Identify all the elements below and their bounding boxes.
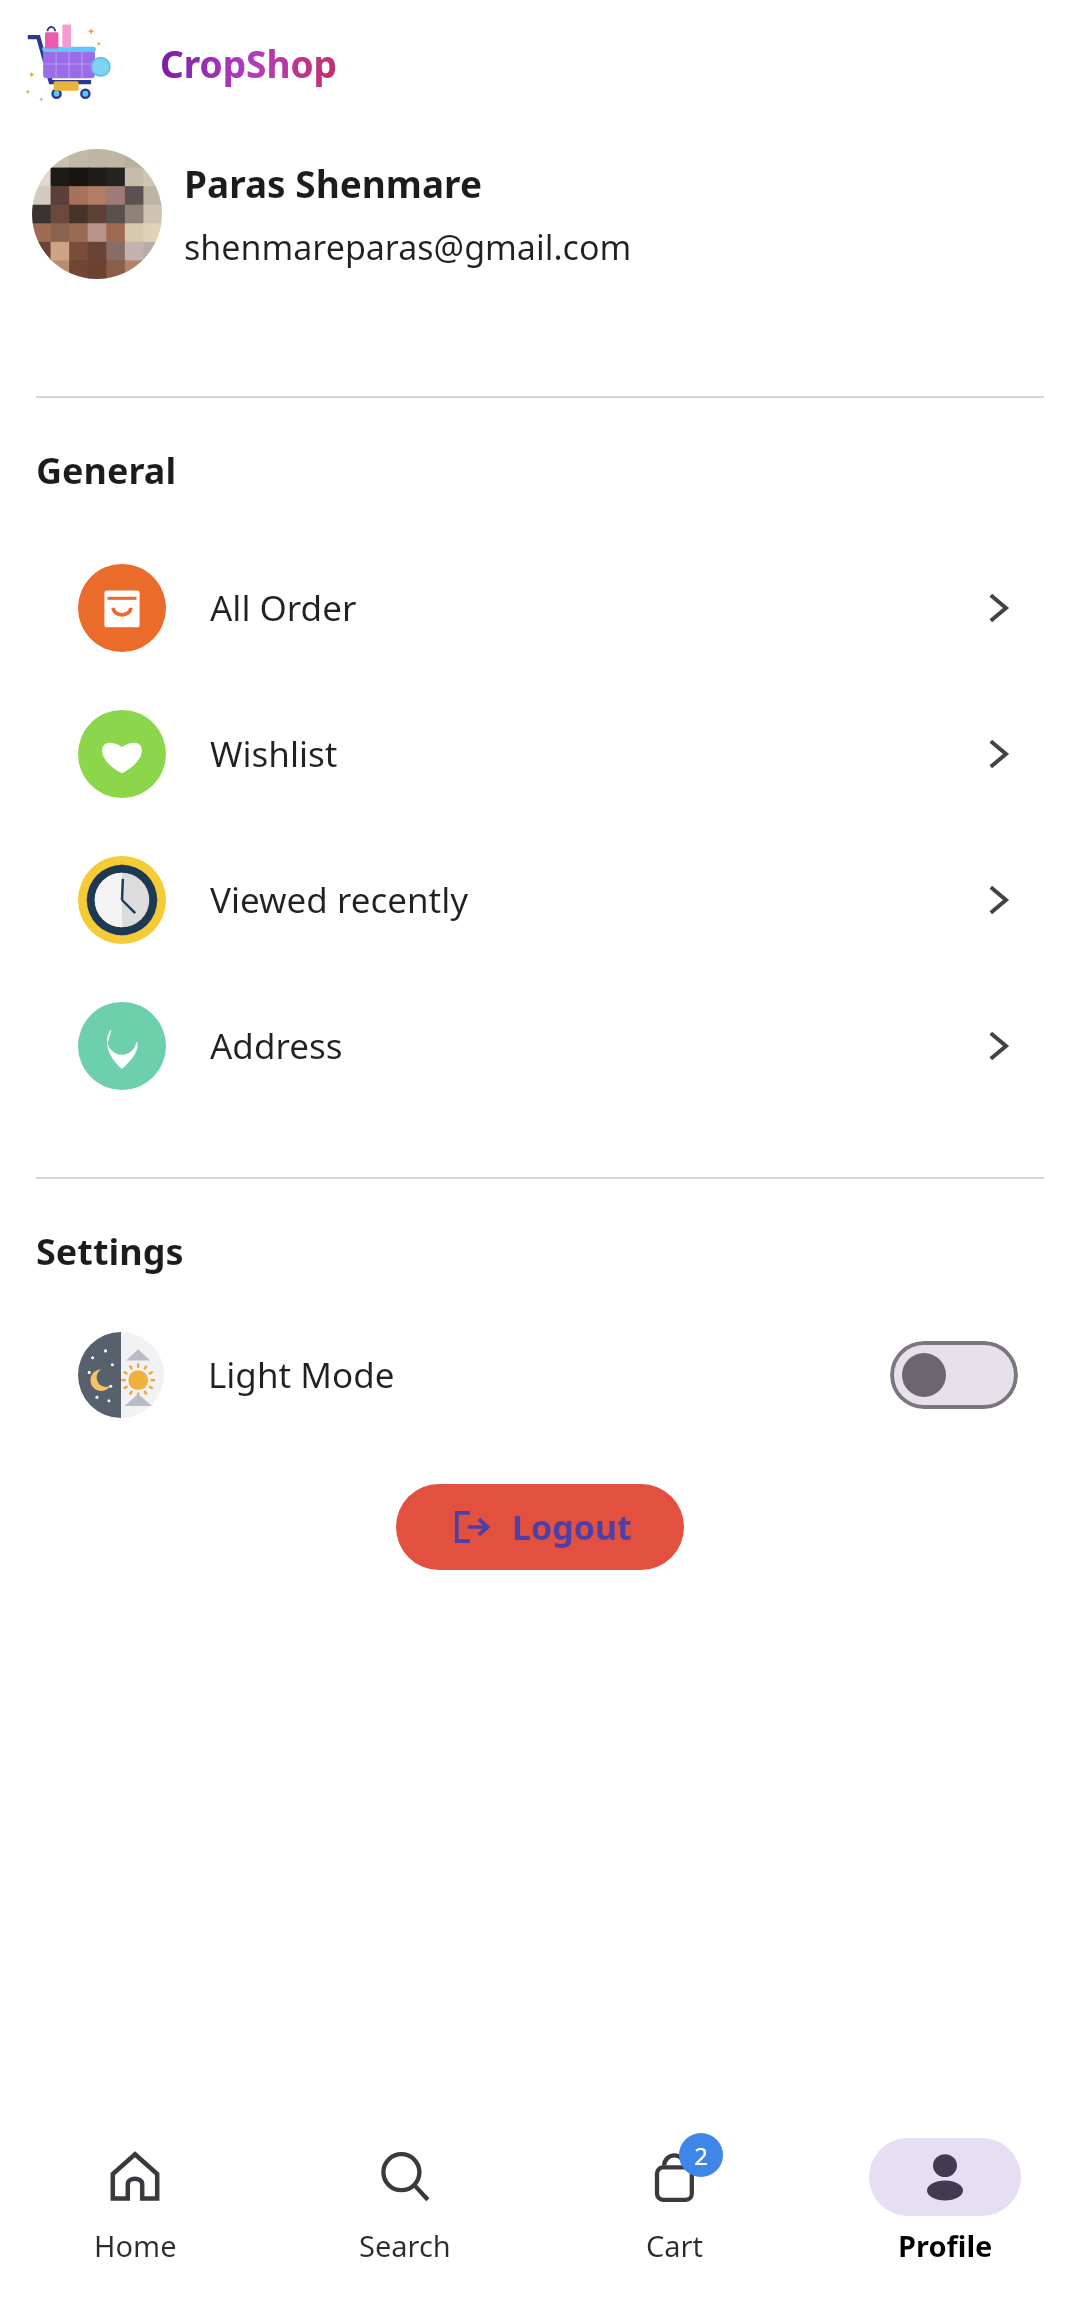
staticText: All Order xyxy=(210,584,357,632)
staticText: Paras Shenmare xyxy=(184,158,482,208)
button[interactable]: Light Mode xyxy=(0,1316,1080,1434)
button[interactable]: Light mode toggle xyxy=(890,1341,1018,1409)
staticText: Home xyxy=(94,2226,177,2265)
staticText: Address xyxy=(210,1022,343,1070)
staticText: Viewed recently xyxy=(210,876,469,924)
button[interactable]: Logout xyxy=(396,1484,684,1570)
staticText: Wishlist xyxy=(210,730,338,778)
button[interactable]: Viewed recently xyxy=(0,827,1080,973)
staticText: Cart xyxy=(646,2226,704,2265)
button[interactable]: Wishlist xyxy=(0,681,1080,827)
staticText: shenmareparas@gmail.com xyxy=(184,224,632,270)
button[interactable]: 2 xyxy=(540,2120,810,2314)
staticText: Settings xyxy=(36,1227,184,1276)
button[interactable]: Address xyxy=(0,973,1080,1119)
button[interactable]: All Order xyxy=(0,535,1080,681)
button[interactable]: Profile xyxy=(810,2120,1080,2314)
staticText: Light Mode xyxy=(208,1351,395,1399)
button[interactable]: Paras Shenmare xyxy=(0,126,1080,301)
button[interactable]: Home xyxy=(0,2120,270,2314)
staticText: General xyxy=(36,446,177,495)
staticText: Logout xyxy=(512,1504,632,1550)
staticText: CropShop xyxy=(160,38,338,88)
button[interactable]: Search xyxy=(270,2120,540,2314)
staticText: Profile xyxy=(898,2226,993,2265)
staticText: 2 xyxy=(694,2139,708,2172)
staticText: Search xyxy=(359,2226,451,2265)
